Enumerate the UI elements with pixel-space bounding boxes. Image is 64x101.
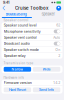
button[interactable]: Wide	[33, 67, 60, 72]
staticText: 62	[56, 23, 60, 27]
staticText: Cruise Toolbox	[15, 5, 49, 11]
button[interactable]: Speaker vent control	[1, 35, 62, 40]
button[interactable]: Speaker sound level	[1, 22, 62, 28]
button[interactable]: Microphone sensitivity	[1, 28, 62, 34]
button[interactable]: Hard Reset	[4, 87, 31, 92]
staticText: Speaker relay	[4, 54, 26, 58]
staticText: Narrow	[11, 67, 23, 71]
button[interactable]: Narrow	[4, 67, 31, 72]
staticText: Broadcast audio	[4, 41, 30, 46]
button[interactable]: Firmware version	[1, 80, 62, 86]
staticText: Speaker switch mode	[4, 48, 39, 52]
staticText: Speaker vent control	[4, 35, 37, 40]
staticText: Speaker	[41, 12, 54, 16]
staticText: Hardware info	[3, 76, 24, 79]
staticText: Broadcasting	[5, 12, 26, 16]
staticText: Transmission type	[3, 61, 33, 65]
staticText: Hard Reset	[9, 88, 26, 92]
staticText: 1.4.2	[53, 81, 60, 85]
button[interactable]: Speaker relay	[1, 53, 62, 59]
button[interactable]: Speaker	[32, 11, 64, 17]
button[interactable]: Broadcasting	[0, 11, 32, 17]
staticText: Firmware version	[4, 81, 32, 85]
button[interactable]: Speaker switch mode	[1, 47, 62, 53]
button[interactable]: Account	[56, 5, 61, 11]
staticText: 9:41	[3, 0, 9, 5]
staticText: Speaker sound level	[4, 23, 37, 27]
staticText: Wide	[43, 67, 51, 71]
staticText: 2	[58, 54, 60, 58]
button[interactable]: Back	[3, 6, 8, 11]
staticText: Microphone sensitivity	[4, 29, 41, 33]
staticText: Send Info	[39, 88, 54, 92]
staticText: Speaker control	[3, 18, 28, 22]
button[interactable]: Broadcast audio	[1, 41, 62, 46]
button[interactable]: Send Info	[33, 87, 60, 92]
staticText: Auto	[53, 35, 60, 40]
staticText: On	[55, 48, 60, 52]
